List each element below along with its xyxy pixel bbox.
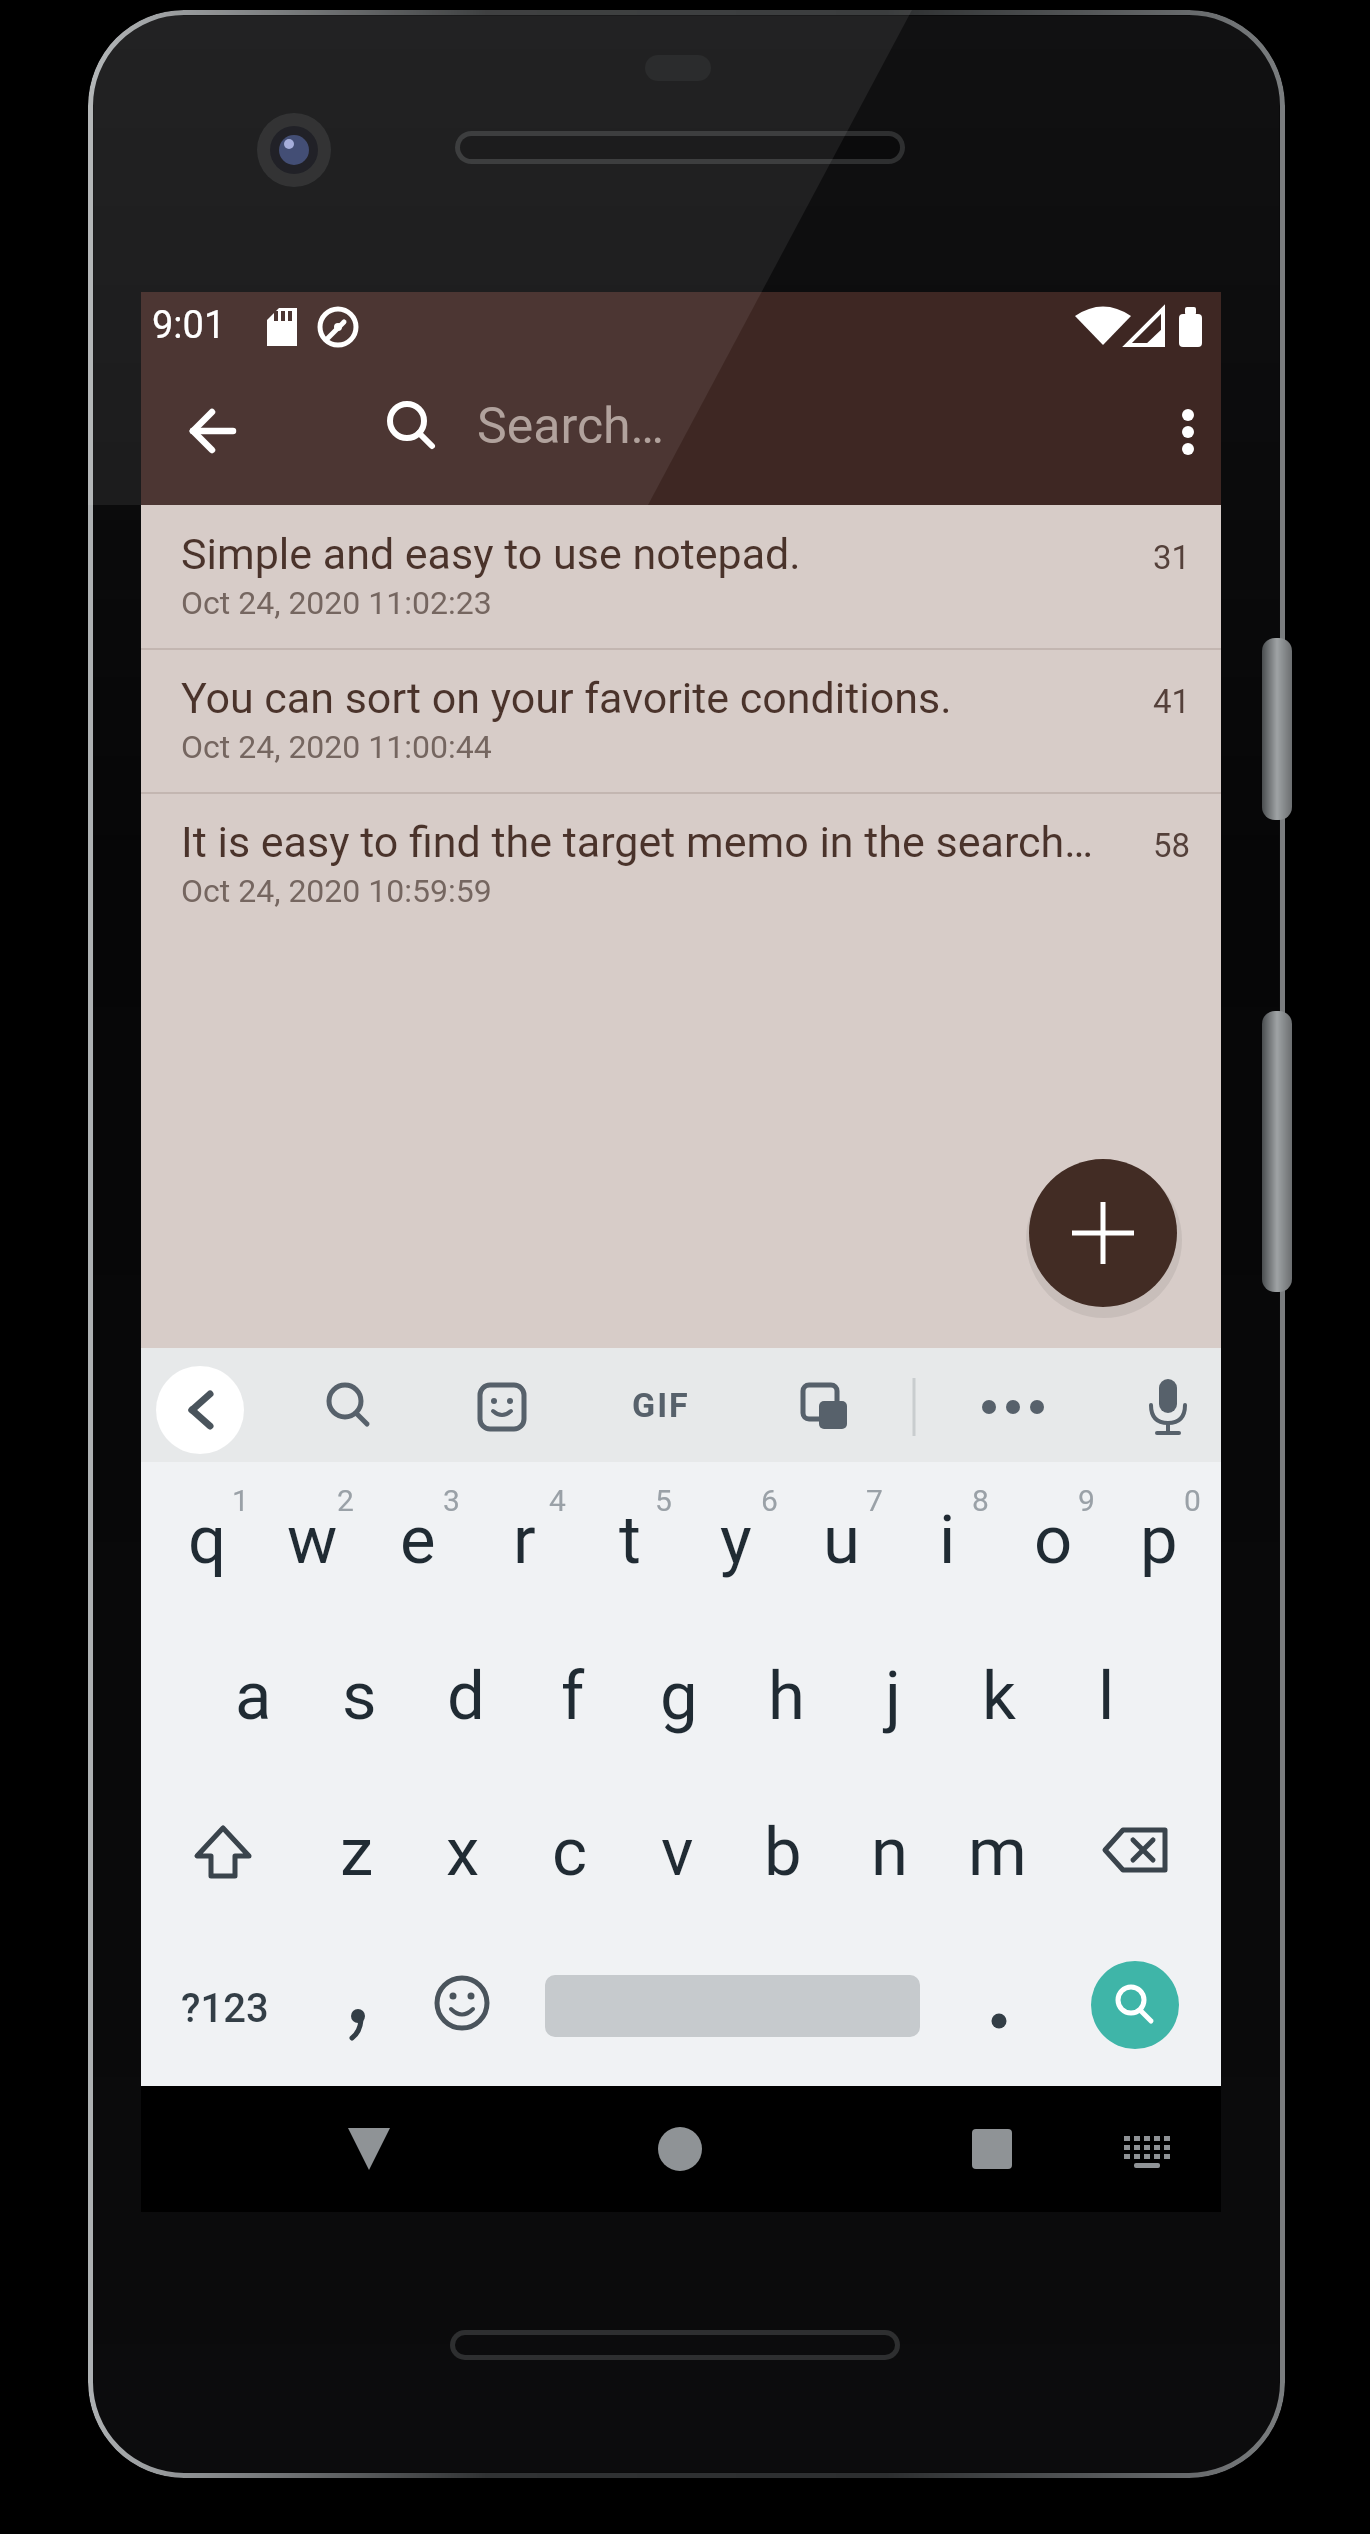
- staticText: l: [1098, 1657, 1115, 1736]
- button[interactable]: g: [627, 1618, 731, 1774]
- button[interactable]: m: [945, 1774, 1049, 1930]
- staticText: n: [871, 1813, 909, 1892]
- button[interactable]: s: [307, 1618, 411, 1774]
- button[interactable]: x: [411, 1774, 515, 1930]
- button[interactable]: u: [789, 1462, 893, 1618]
- button[interactable]: h: [734, 1618, 838, 1774]
- button[interactable]: v: [625, 1774, 729, 1930]
- staticText: m: [968, 1813, 1027, 1892]
- staticText: 9: [1078, 1483, 1095, 1518]
- button[interactable]: t: [578, 1462, 682, 1618]
- button[interactable]: w: [260, 1462, 364, 1618]
- button[interactable]: f: [521, 1618, 625, 1774]
- staticText: 58: [1153, 826, 1191, 865]
- button[interactable]: Simple and easy to use notepad.: [141, 505, 1221, 649]
- staticText: x: [446, 1813, 480, 1892]
- button[interactable]: [326, 2106, 412, 2192]
- staticText: Oct 24, 2020 10:59:59: [181, 872, 492, 910]
- staticText: 5: [655, 1483, 672, 1518]
- staticText: 41: [1153, 682, 1191, 721]
- staticText: d: [447, 1657, 485, 1736]
- button[interactable]: [410, 1930, 514, 2086]
- button[interactable]: c: [518, 1774, 622, 1930]
- button[interactable]: [156, 1366, 244, 1454]
- staticText: ?123: [181, 1985, 269, 2032]
- staticText: Search…: [477, 397, 665, 456]
- staticText: 9:01: [152, 303, 226, 348]
- button[interactable]: z: [305, 1774, 409, 1930]
- staticText: Oct 24, 2020 11:00:44: [181, 728, 492, 766]
- staticText: f: [561, 1657, 585, 1736]
- staticText: 7: [866, 1483, 883, 1518]
- staticText: s: [342, 1657, 377, 1736]
- staticText: k: [982, 1657, 1016, 1736]
- staticText: h: [768, 1657, 805, 1736]
- button[interactable]: [163, 1774, 283, 1930]
- button[interactable]: r: [472, 1462, 576, 1618]
- staticText: GIF: [632, 1385, 690, 1425]
- button[interactable]: p: [1107, 1462, 1211, 1618]
- staticText: a: [235, 1657, 272, 1736]
- button[interactable]: [1143, 382, 1221, 482]
- button[interactable]: e: [366, 1462, 470, 1618]
- staticText: p: [1140, 1501, 1178, 1580]
- button[interactable]: o: [1001, 1462, 1105, 1618]
- button[interactable]: [306, 1930, 410, 2086]
- staticText: y: [720, 1501, 752, 1580]
- staticText: q: [188, 1501, 227, 1580]
- staticText: z: [340, 1813, 374, 1892]
- button[interactable]: [1029, 1159, 1177, 1307]
- button[interactable]: It is easy to find the target memo in th…: [141, 793, 1221, 937]
- staticText: 2: [337, 1483, 354, 1518]
- staticText: Simple and easy to use notepad.: [181, 529, 801, 579]
- button[interactable]: [947, 1930, 1051, 2086]
- button[interactable]: l: [1054, 1618, 1158, 1774]
- staticText: It is easy to find the target memo in th…: [181, 817, 1094, 867]
- staticText: 31: [1153, 538, 1191, 577]
- button[interactable]: y: [684, 1462, 788, 1618]
- staticText: 1: [232, 1483, 249, 1518]
- staticText: v: [661, 1813, 694, 1892]
- staticText: r: [513, 1501, 536, 1580]
- button[interactable]: j: [841, 1618, 945, 1774]
- staticText: e: [400, 1501, 436, 1580]
- button[interactable]: i: [895, 1462, 999, 1618]
- button[interactable]: [949, 2106, 1035, 2192]
- staticText: 8: [972, 1483, 989, 1518]
- staticText: You can sort on your favorite conditions…: [181, 673, 952, 723]
- button[interactable]: ?123: [165, 1930, 285, 2086]
- button[interactable]: [1103, 2106, 1189, 2192]
- button[interactable]: [1075, 1774, 1195, 1930]
- staticText: o: [1034, 1501, 1073, 1580]
- staticText: 6: [761, 1483, 778, 1518]
- staticText: t: [619, 1501, 641, 1580]
- button[interactable]: d: [414, 1618, 518, 1774]
- button[interactable]: You can sort on your favorite conditions…: [141, 649, 1221, 793]
- button[interactable]: k: [947, 1618, 1051, 1774]
- button[interactable]: GIF: [621, 1368, 701, 1442]
- button[interactable]: a: [201, 1618, 305, 1774]
- button[interactable]: [1091, 1961, 1179, 2049]
- staticText: b: [764, 1813, 802, 1892]
- staticText: 3: [443, 1483, 460, 1518]
- staticText: 0: [1184, 1483, 1201, 1518]
- staticText: j: [885, 1657, 902, 1736]
- button[interactable]: Search…: [351, 374, 1091, 490]
- button[interactable]: b: [731, 1774, 835, 1930]
- button[interactable]: [159, 379, 263, 483]
- button[interactable]: q: [155, 1462, 259, 1618]
- staticText: c: [552, 1813, 588, 1892]
- staticText: 4: [549, 1483, 566, 1518]
- button[interactable]: n: [838, 1774, 942, 1930]
- staticText: u: [823, 1501, 860, 1580]
- button[interactable]: [637, 2106, 723, 2192]
- staticText: i: [939, 1501, 956, 1580]
- staticText: g: [660, 1657, 698, 1736]
- staticText: Oct 24, 2020 11:02:23: [181, 584, 492, 622]
- staticText: w: [287, 1501, 338, 1580]
